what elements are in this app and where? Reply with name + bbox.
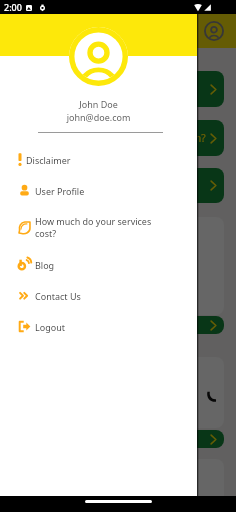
staticText: Contact Us: [35, 290, 81, 302]
button[interactable]: [10, 71, 224, 107]
button[interactable]: [10, 316, 224, 334]
button[interactable]: [10, 168, 224, 203]
staticText: How much do your services cost?: [35, 215, 157, 240]
staticText: Disclaimer: [26, 154, 71, 166]
button[interactable]: How much do your services cost?: [0, 206, 197, 249]
button[interactable]: Profile: [204, 21, 224, 41]
button[interactable]: Disclaimer: [0, 144, 197, 175]
staticText: Blog: [35, 259, 55, 271]
button[interactable]: Logout: [0, 311, 197, 342]
button[interactable]: [10, 459, 224, 512]
button[interactable]: Blog: [0, 249, 197, 280]
button[interactable]: [10, 357, 224, 428]
staticText: 2:00: [4, 1, 22, 13]
button[interactable]: User Profile: [0, 175, 197, 206]
button[interactable]: [10, 430, 224, 448]
button[interactable]: on?: [10, 120, 224, 156]
staticText: on?: [189, 131, 206, 145]
staticText: John Doe: [0, 98, 197, 110]
staticText: User Profile: [35, 185, 85, 197]
staticText: john@doe.com: [0, 111, 197, 123]
button[interactable]: [10, 217, 224, 315]
button[interactable]: Contact Us: [0, 280, 197, 311]
staticText: Logout: [35, 321, 65, 333]
